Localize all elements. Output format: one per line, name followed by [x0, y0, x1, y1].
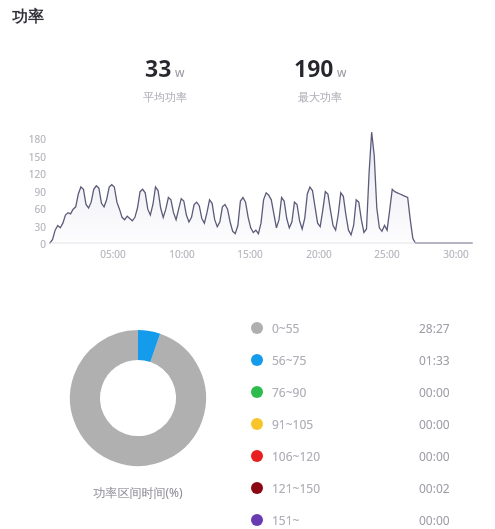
staticText: 180 [10, 132, 46, 146]
staticText: 90 [10, 185, 46, 199]
button[interactable]: 76~90 [250, 376, 450, 408]
button[interactable]: 56~75 [250, 344, 450, 376]
staticText: 150 [10, 150, 46, 164]
button[interactable]: 190 [260, 52, 380, 104]
staticText: 05:00 [88, 247, 138, 261]
staticText: 功率 [12, 7, 44, 27]
staticText: 15:00 [225, 247, 275, 261]
staticText: 00:02 [419, 480, 450, 496]
button[interactable]: 106~120 [250, 440, 450, 472]
staticText: 0 [10, 237, 46, 251]
staticText: 76~90 [272, 384, 307, 400]
staticText: 00:00 [419, 384, 450, 400]
button[interactable]: 121~150 [250, 472, 450, 504]
staticText: 最大功率 [298, 90, 342, 104]
staticText: 0~55 [272, 320, 300, 336]
staticText: 30 [10, 220, 46, 234]
staticText: 功率区间时间(%) [58, 484, 218, 500]
staticText: w [175, 64, 185, 80]
staticText: w [337, 64, 347, 80]
staticText: 30:00 [431, 247, 481, 261]
staticText: 00:00 [419, 448, 450, 464]
button[interactable]: 0~55 [250, 312, 450, 344]
button[interactable]: 91~105 [250, 408, 450, 440]
staticText: 33 [145, 52, 172, 83]
staticText: 20:00 [294, 247, 344, 261]
staticText: 28:27 [419, 320, 450, 336]
staticText: 106~120 [272, 448, 321, 464]
staticText: 151~ [272, 512, 300, 528]
staticText: 01:33 [419, 352, 450, 368]
staticText: 60 [10, 202, 46, 216]
button[interactable]: 33 [105, 52, 225, 104]
staticText: 91~105 [272, 416, 314, 432]
staticText: 56~75 [272, 352, 307, 368]
staticText: 00:00 [419, 512, 450, 528]
button[interactable]: 151~ [250, 504, 450, 529]
staticText: 120 [10, 167, 46, 181]
staticText: 25:00 [362, 247, 412, 261]
button[interactable]: Power zone distribution chart [58, 318, 218, 478]
staticText: 190 [294, 52, 334, 83]
staticText: 121~150 [272, 480, 321, 496]
staticText: 平均功率 [143, 90, 187, 104]
staticText: 10:00 [157, 247, 207, 261]
staticText: 00:00 [419, 416, 450, 432]
